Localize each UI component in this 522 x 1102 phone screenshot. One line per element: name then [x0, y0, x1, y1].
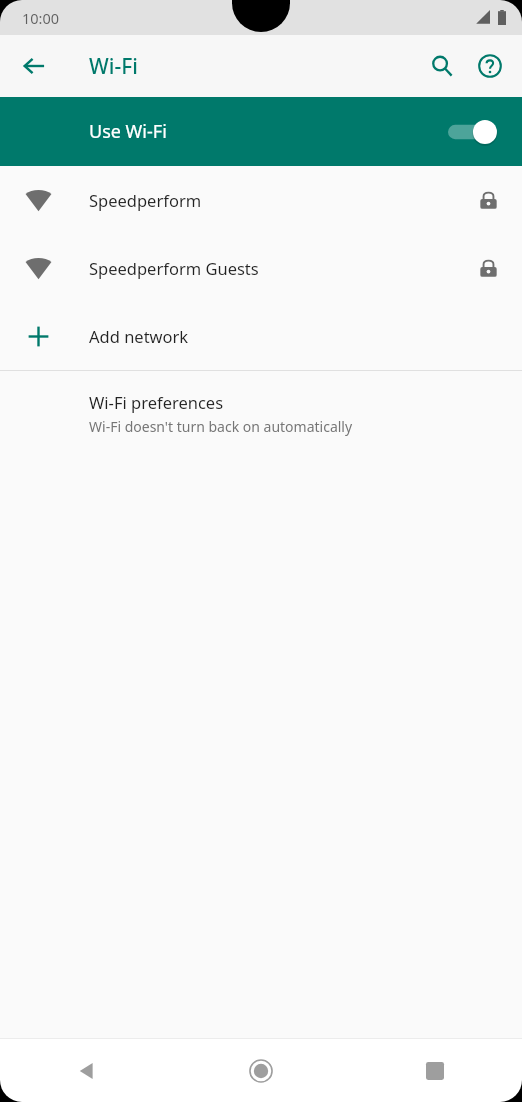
staticText: Wi-Fi: [89, 52, 138, 81]
staticText: Wi-Fi preferences: [89, 391, 224, 413]
button[interactable]: Speedperform Guests: [0, 234, 522, 302]
staticText: Speedperform Guests: [89, 257, 259, 279]
button[interactable]: Use Wi-Fi: [0, 97, 522, 166]
staticText: 10:00: [22, 8, 60, 28]
button[interactable]: Recents: [348, 1039, 522, 1102]
staticText: Speedperform: [89, 189, 202, 211]
button[interactable]: Search: [418, 42, 466, 90]
button[interactable]: Help: [466, 42, 514, 90]
button[interactable]: Speedperform: [0, 166, 522, 234]
button[interactable]: Back: [0, 1039, 174, 1102]
staticText: Add network: [89, 325, 189, 347]
button[interactable]: Home: [174, 1039, 348, 1102]
staticText: Use Wi-Fi: [89, 119, 167, 144]
staticText: Wi-Fi doesn't turn back on automatically: [89, 417, 353, 436]
button[interactable]: Back: [10, 42, 58, 90]
button[interactable]: Wi-Fi preferences: [0, 371, 522, 452]
button[interactable]: Add network: [0, 302, 522, 370]
